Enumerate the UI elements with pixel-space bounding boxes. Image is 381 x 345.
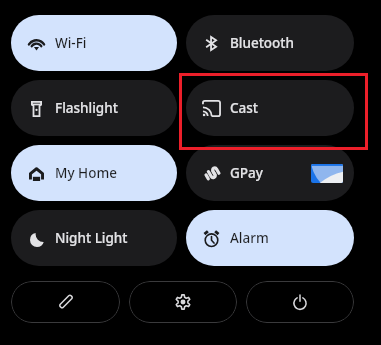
staticText: Wi-Fi <box>55 34 87 52</box>
button[interactable]: Alarm <box>186 210 354 266</box>
staticText: Night Light <box>55 229 128 247</box>
staticText: Flashlight <box>55 99 118 117</box>
staticText: Bluetooth <box>230 34 294 52</box>
button[interactable]: Settings <box>129 281 237 323</box>
button[interactable]: Cast <box>186 80 354 136</box>
button[interactable]: Bluetooth <box>186 15 354 71</box>
staticText: Cast <box>230 99 259 117</box>
staticText: My Home <box>55 164 117 182</box>
button[interactable]: Power <box>246 281 354 323</box>
button[interactable]: Edit tiles <box>11 281 120 323</box>
button[interactable]: Wi-Fi <box>11 15 177 71</box>
button[interactable]: Night Light <box>11 210 177 266</box>
button[interactable]: My Home <box>11 145 177 201</box>
button[interactable]: GPay <box>186 145 354 201</box>
button[interactable]: Flashlight <box>11 80 177 136</box>
staticText: Alarm <box>230 229 269 247</box>
staticText: GPay <box>230 164 263 182</box>
